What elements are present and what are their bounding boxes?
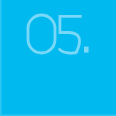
button[interactable]: Step 05 — [0, 0, 116, 116]
